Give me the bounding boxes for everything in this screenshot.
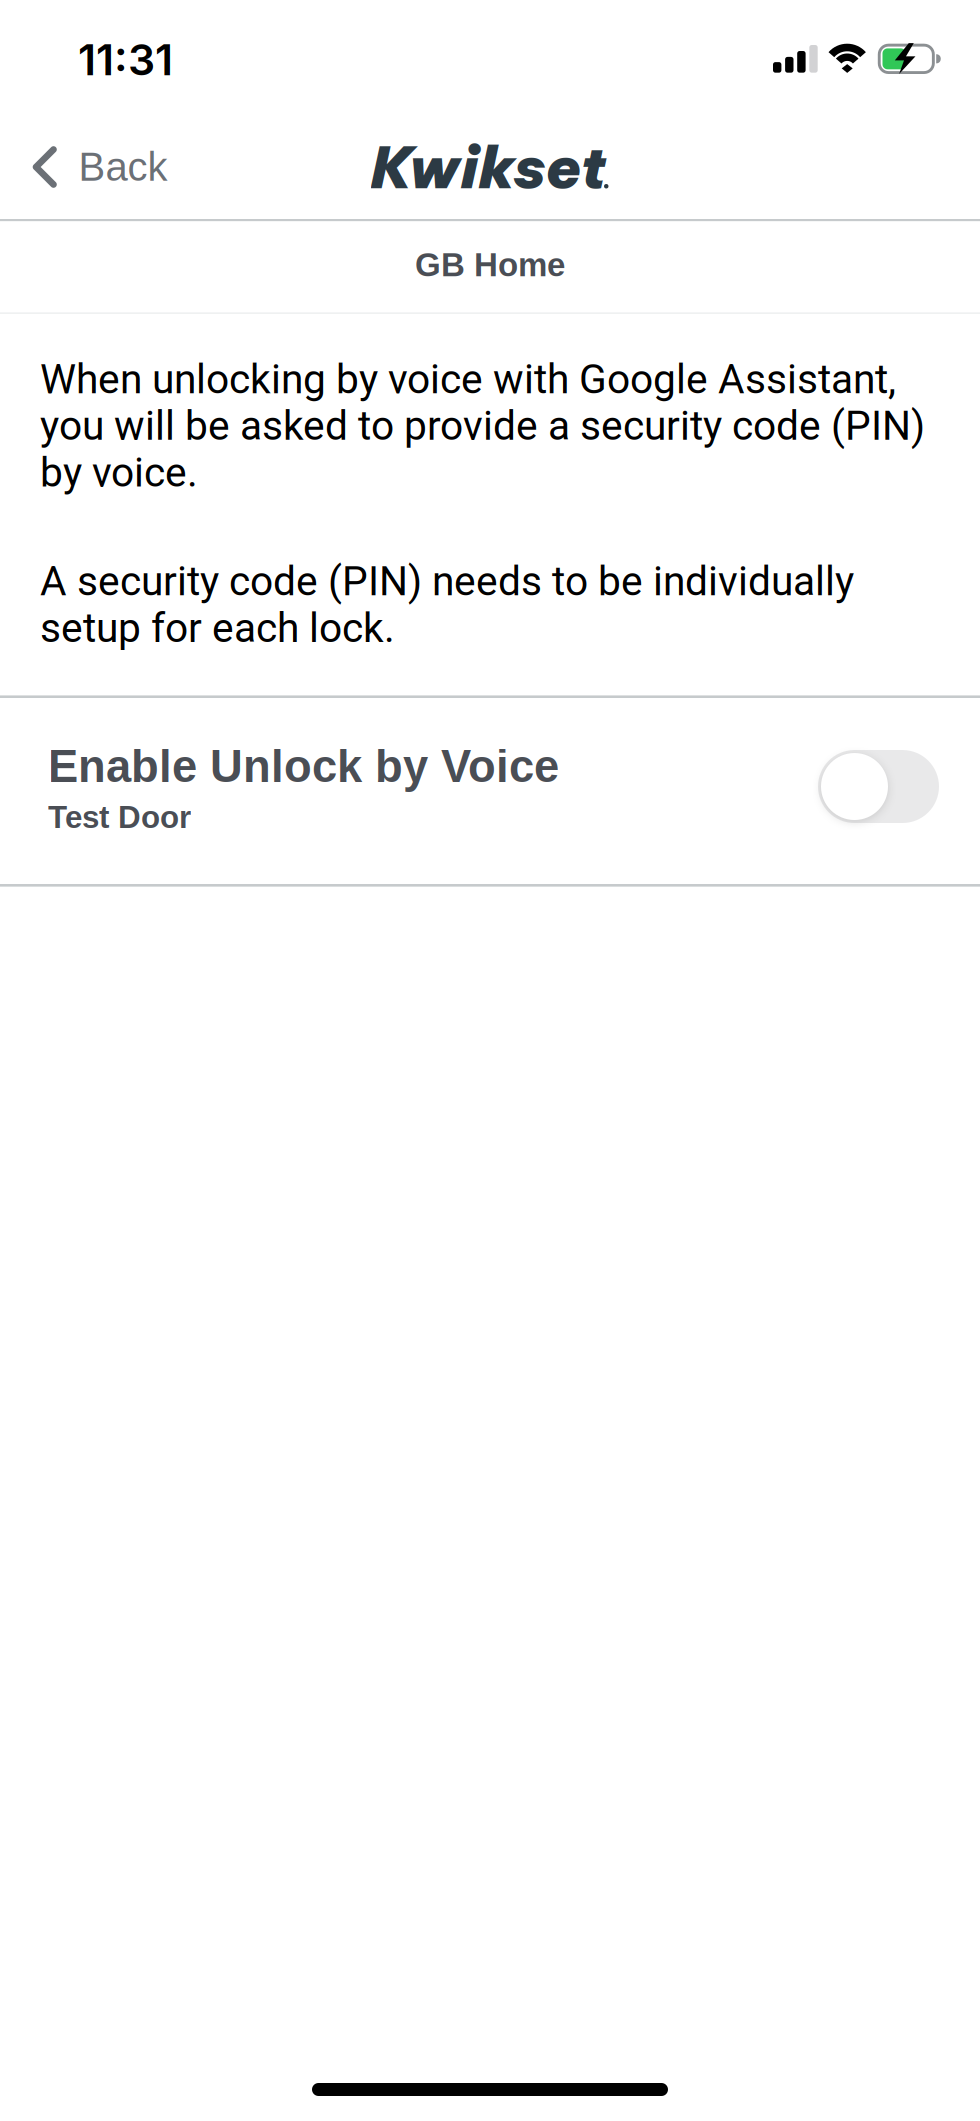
staticText: Enable Unlock by Voice	[48, 741, 559, 792]
staticText: When unlocking by voice with Google Assi…	[40, 356, 925, 496]
staticText: 11:31	[78, 34, 173, 86]
staticText: A security code (PIN) needs to be indivi…	[40, 558, 854, 651]
staticText: GB Home	[415, 246, 565, 283]
staticText: Test Door	[48, 800, 191, 835]
button[interactable]: Back	[0, 110, 178, 219]
button[interactable]: Enable Unlock by Voice	[0, 698, 980, 884]
staticText: Kwikset	[370, 131, 606, 203]
staticText: Back	[78, 144, 167, 189]
